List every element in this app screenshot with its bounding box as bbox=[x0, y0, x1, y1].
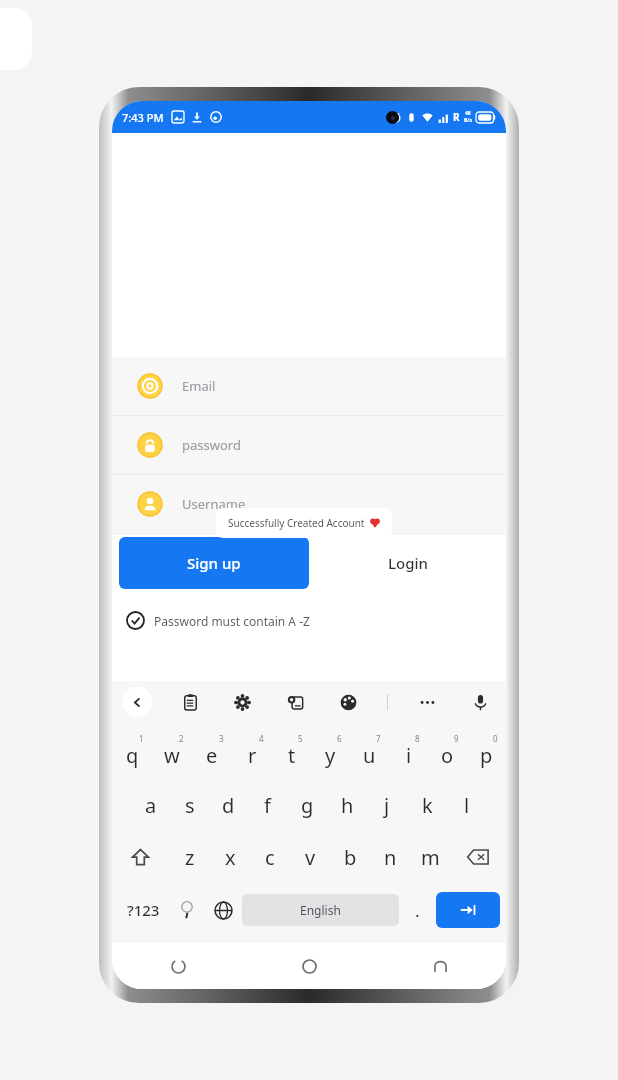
staticText: 7:43 PM bbox=[122, 110, 164, 125]
staticText: 5 bbox=[298, 733, 303, 744]
staticText: o bbox=[441, 742, 454, 769]
button[interactable]: l bbox=[447, 779, 487, 831]
staticText: Login bbox=[388, 553, 428, 573]
staticText: a bbox=[145, 792, 157, 819]
button[interactable]: Enter bbox=[436, 892, 500, 928]
button[interactable]: More bbox=[413, 688, 441, 716]
button[interactable]: 1 bbox=[112, 727, 152, 779]
staticText: z bbox=[185, 844, 195, 871]
staticText: g bbox=[301, 792, 314, 819]
button[interactable]: c bbox=[250, 831, 290, 883]
button[interactable]: 4 bbox=[232, 727, 272, 779]
staticText: English bbox=[300, 902, 341, 918]
button[interactable]: n bbox=[370, 831, 410, 883]
staticText: password bbox=[182, 436, 241, 454]
staticText: e bbox=[206, 742, 218, 769]
button[interactable]: k bbox=[407, 779, 447, 831]
button[interactable]: Login bbox=[309, 537, 506, 589]
staticText: 7 bbox=[376, 733, 381, 744]
staticText: Password must contain A -Z bbox=[154, 613, 310, 629]
button[interactable]: Sign up bbox=[119, 537, 309, 589]
button[interactable]: Clipboard bbox=[176, 688, 204, 716]
button[interactable]: a bbox=[131, 779, 170, 831]
button[interactable]: m bbox=[410, 831, 450, 883]
staticText: x bbox=[225, 844, 236, 871]
staticText: p bbox=[480, 742, 493, 769]
button[interactable]: ?123 bbox=[118, 883, 168, 937]
button[interactable]: Voice input bbox=[466, 688, 494, 716]
staticText: n bbox=[384, 844, 397, 871]
button[interactable]: 5 bbox=[272, 727, 311, 779]
staticText: w bbox=[164, 742, 180, 769]
button[interactable]: z bbox=[169, 831, 210, 883]
staticText: Sign up bbox=[187, 553, 241, 573]
button[interactable]: Password must contain A -Z bbox=[126, 611, 506, 630]
staticText: Email bbox=[182, 377, 216, 395]
staticText: ?123 bbox=[127, 900, 160, 920]
staticText: u bbox=[363, 742, 376, 769]
staticText: 8 bbox=[415, 733, 420, 744]
button[interactable]: Shift bbox=[112, 831, 169, 883]
button[interactable]: Email bbox=[112, 357, 506, 415]
staticText: 9 bbox=[454, 733, 459, 744]
staticText: 2 bbox=[179, 733, 184, 744]
button[interactable]: Back bbox=[122, 687, 152, 717]
staticText: 6 bbox=[337, 733, 342, 744]
staticText: m bbox=[421, 844, 440, 871]
button[interactable]: x bbox=[210, 831, 250, 883]
button[interactable]: b bbox=[330, 831, 370, 883]
staticText: y bbox=[325, 742, 336, 769]
staticText: q bbox=[126, 742, 139, 769]
button[interactable]: j bbox=[367, 779, 407, 831]
button[interactable]: 6 bbox=[311, 727, 350, 779]
staticText: Successfully Created Account bbox=[228, 516, 365, 530]
staticText: 4 bbox=[259, 733, 264, 744]
staticText: b bbox=[344, 844, 357, 871]
staticText: f bbox=[264, 792, 271, 819]
button[interactable]: Recents bbox=[112, 943, 244, 989]
staticText: i bbox=[406, 742, 412, 769]
staticText: 48 bbox=[465, 110, 471, 117]
staticText: v bbox=[305, 844, 316, 871]
button[interactable]: s bbox=[170, 779, 209, 831]
staticText: s bbox=[185, 792, 195, 819]
button[interactable]: 2 bbox=[152, 727, 192, 779]
button[interactable]: Backspace bbox=[450, 831, 506, 883]
button[interactable]: g bbox=[287, 779, 327, 831]
staticText: l bbox=[464, 792, 470, 819]
button[interactable]: Emoji and comma bbox=[168, 883, 205, 937]
staticText: R bbox=[453, 110, 460, 124]
staticText: Username bbox=[182, 495, 246, 513]
staticText: 1 bbox=[139, 733, 144, 744]
button[interactable]: h bbox=[327, 779, 367, 831]
staticText: d bbox=[222, 792, 235, 819]
button[interactable]: password bbox=[112, 416, 506, 474]
button[interactable]: 0 bbox=[467, 727, 506, 779]
staticText: B/s bbox=[464, 117, 472, 124]
button[interactable]: Settings bbox=[228, 688, 256, 716]
button[interactable]: Username bbox=[112, 475, 506, 533]
staticText: t bbox=[288, 742, 296, 769]
staticText: 3 bbox=[219, 733, 224, 744]
button[interactable]: 8 bbox=[389, 727, 428, 779]
button[interactable]: 7 bbox=[350, 727, 389, 779]
staticText: 0 bbox=[493, 733, 498, 744]
button[interactable]: f bbox=[248, 779, 287, 831]
button[interactable]: 3 bbox=[192, 727, 232, 779]
button[interactable]: v bbox=[290, 831, 330, 883]
button[interactable]: Back bbox=[375, 943, 506, 989]
staticText: . bbox=[415, 899, 420, 922]
staticText: j bbox=[384, 792, 390, 819]
staticText: h bbox=[341, 792, 354, 819]
button[interactable]: . bbox=[399, 883, 436, 937]
staticText: r bbox=[248, 742, 257, 769]
staticText: k bbox=[422, 792, 433, 819]
button[interactable]: Change language bbox=[205, 883, 242, 937]
staticText: c bbox=[265, 844, 275, 871]
button[interactable]: Home bbox=[244, 943, 375, 989]
button[interactable]: Theme bbox=[334, 688, 362, 716]
button[interactable]: Translate bbox=[281, 688, 309, 716]
button[interactable]: English bbox=[242, 894, 399, 926]
button[interactable]: d bbox=[209, 779, 248, 831]
button[interactable]: 9 bbox=[428, 727, 467, 779]
